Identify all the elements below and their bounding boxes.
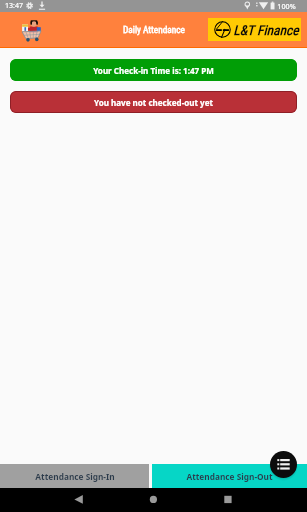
staticText: 100% <box>277 1 296 11</box>
button[interactable]: Your Check-in Time is: 1:47 PM <box>10 59 297 81</box>
staticText: 13:47 <box>5 1 23 11</box>
button[interactable]: L&T Finance <box>208 18 301 41</box>
staticText: You have not checked-out yet <box>94 97 213 108</box>
staticText: Daily Attendance <box>123 24 185 35</box>
staticText: Your Check-in Time is: 1:47 PM <box>93 65 214 76</box>
staticText: L&T Finance <box>233 22 299 38</box>
button[interactable]: Attendance Sign-Out <box>152 464 307 488</box>
button[interactable]: Menu <box>270 451 297 478</box>
staticText: Attendance Sign-Out <box>186 471 273 482</box>
button[interactable]: Attendance Sign-In <box>0 464 149 488</box>
button[interactable]: You have not checked-out yet <box>10 91 297 113</box>
staticText: Attendance Sign-In <box>35 471 115 482</box>
